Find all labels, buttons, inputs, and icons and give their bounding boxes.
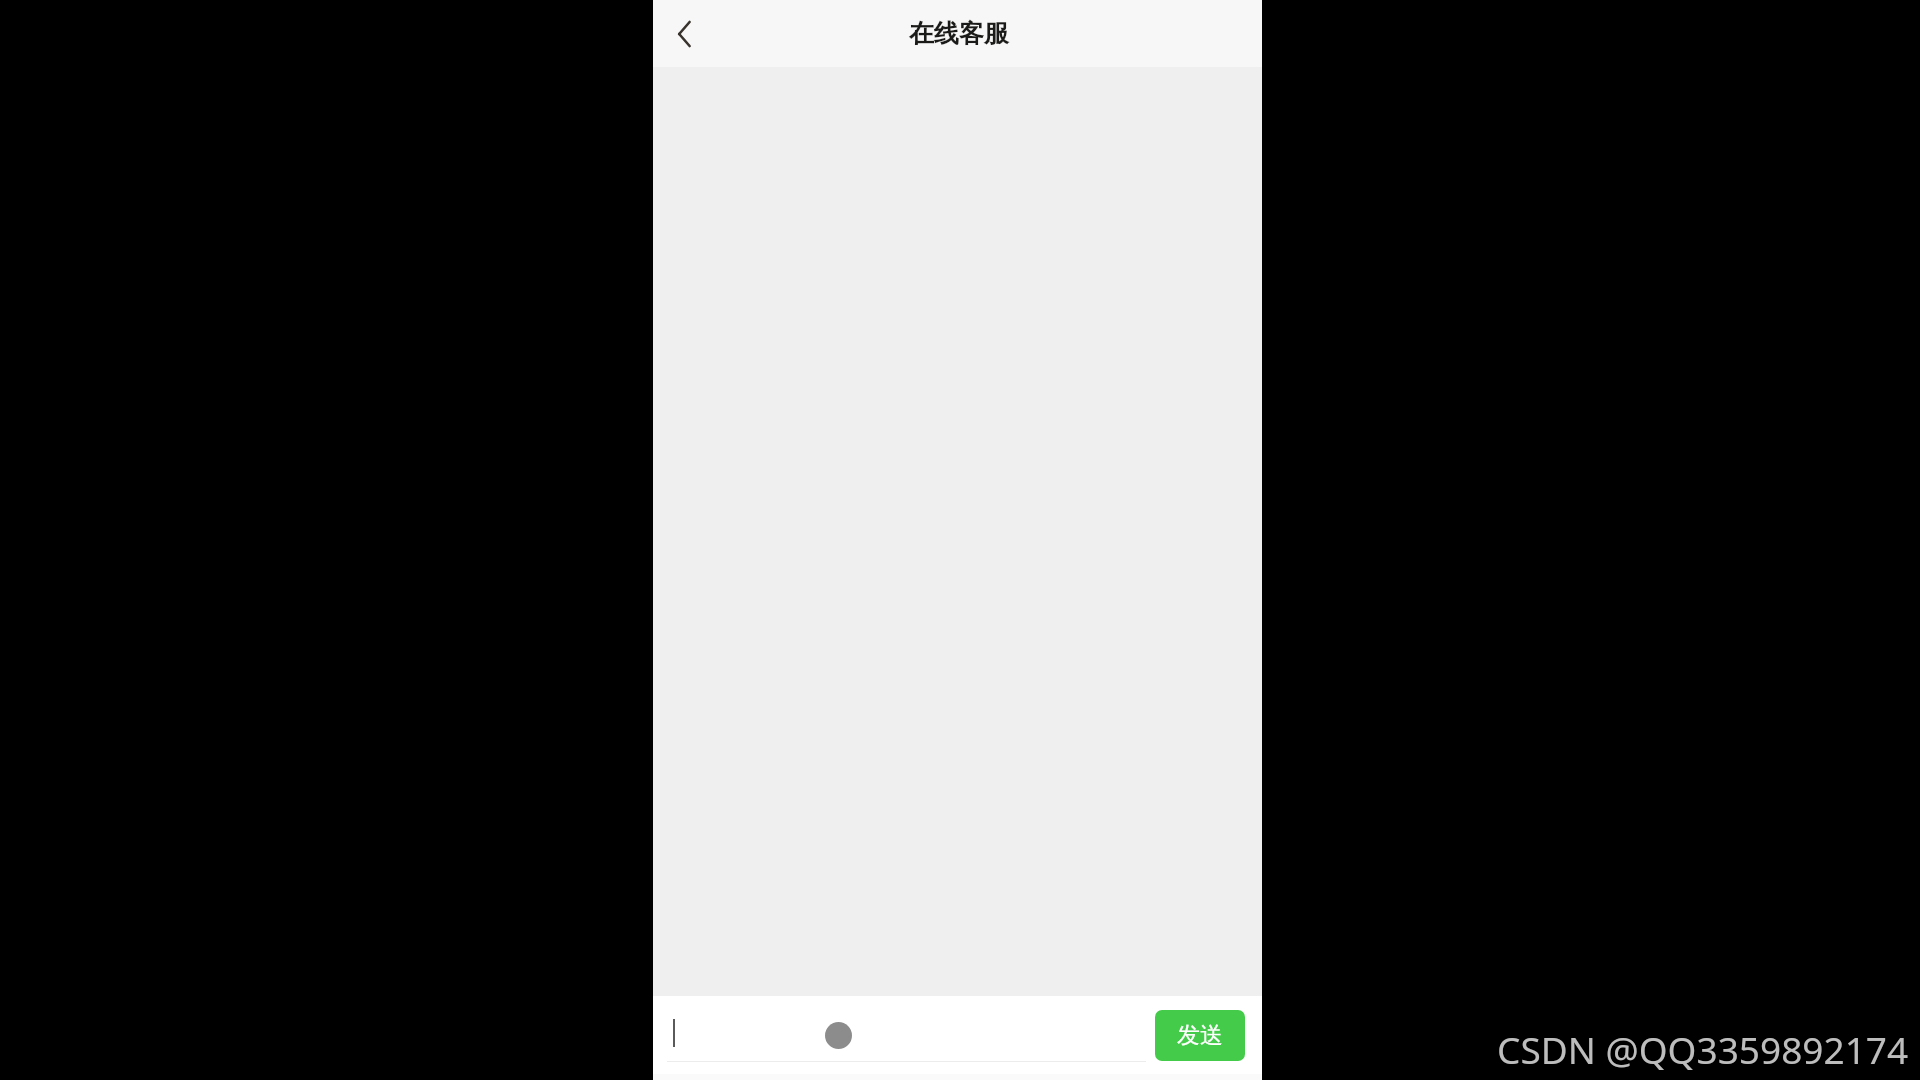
- staticText: 在线客服: [909, 18, 1009, 49]
- button[interactable]: 发送: [1155, 1010, 1245, 1061]
- button[interactable]: [667, 996, 1146, 1074]
- staticText: CSDN @QQ3359892174: [1497, 1024, 1909, 1074]
- staticText: 发送: [1177, 1021, 1223, 1050]
- button[interactable]: Back: [653, 0, 715, 67]
